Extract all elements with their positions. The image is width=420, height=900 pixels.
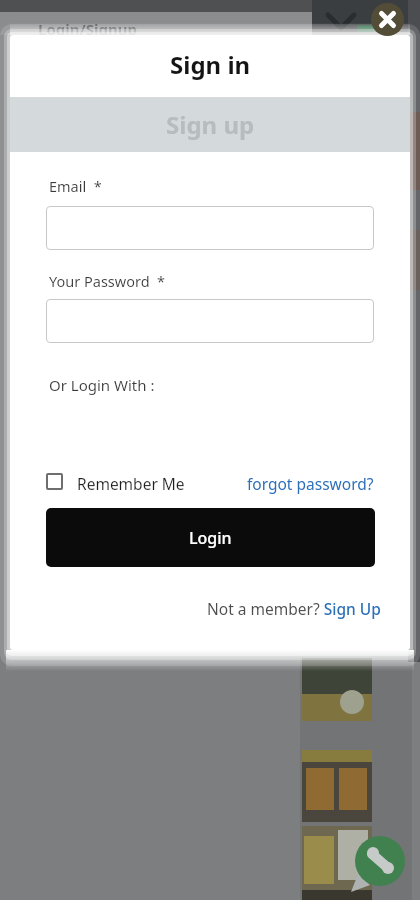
button[interactable]: Sign in <box>10 35 410 93</box>
button[interactable]: forgot password? <box>247 473 374 494</box>
button[interactable] <box>348 830 412 894</box>
button[interactable]: Not a member? Sign Up <box>207 598 381 619</box>
button[interactable]: Sign up <box>10 97 410 152</box>
staticText: Login <box>189 527 232 549</box>
button[interactable] <box>46 206 374 250</box>
staticText: Email * <box>49 176 102 196</box>
staticText: Sign in <box>170 48 251 81</box>
button[interactable] <box>46 299 374 343</box>
button[interactable] <box>371 3 404 36</box>
staticText: Login/Signup <box>38 19 137 39</box>
staticText: Remember Me <box>77 473 185 494</box>
staticText: Or Login With : <box>49 375 155 395</box>
button[interactable] <box>46 473 63 490</box>
staticText: Sign up <box>166 108 255 141</box>
staticText: Your Password * <box>49 271 166 291</box>
button[interactable]: Login <box>46 508 375 567</box>
